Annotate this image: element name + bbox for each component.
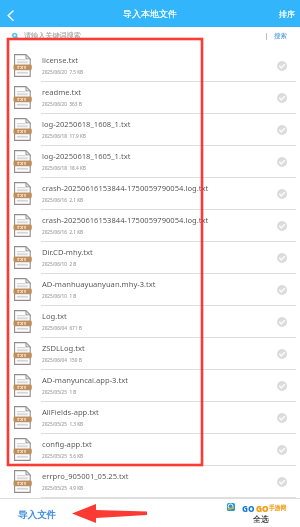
staticText: crash-20250616153844-1750059790054.log.t… [42,215,209,225]
button[interactable]: TXT [0,146,300,178]
button[interactable]: TXT [0,210,300,242]
staticText: AllFields-app.txt [42,407,99,417]
staticText: 2025/06/20 7.5 KB [42,69,84,75]
staticText: 2025/05/25 1 B [42,389,77,395]
staticText: 搜索 [274,32,287,40]
staticText: errpro_905001_05.25.txt [42,471,129,481]
button[interactable]: Select file [277,93,287,103]
staticText: TXT [17,97,28,103]
button[interactable]: TXT [0,338,300,370]
staticText: GO [256,503,269,514]
staticText: 导入文件 [18,509,56,521]
staticText: 2025/06/10 2 B [42,261,77,267]
staticText: Dir.CD-mhy.txt [42,247,93,257]
staticText: log-20250618_1608_1.txt [42,119,131,129]
button[interactable]: TXT [0,274,300,306]
staticText: log-20250618_1605_1.txt [42,151,131,161]
staticText: Log.txt [42,311,67,321]
button[interactable]: TXT [0,178,300,210]
button[interactable]: TXT [0,82,300,114]
button[interactable]: Back [0,2,24,26]
staticText: 2025/06/04 150 B [42,357,82,363]
staticText: config-app.txt [42,439,92,449]
staticText: 导入本地文件 [123,8,177,19]
button[interactable]: Select file [277,221,287,231]
staticText: 2025/06/16 2.1 KB [42,229,84,235]
staticText: 2025/05/25 1.3 KB [42,421,84,427]
staticText: crash-20250616153844-1750059790054.log.t… [42,183,209,193]
staticText: 2025/06/20 563 B [42,101,82,107]
staticText: TXT [17,225,28,231]
staticText: TXT [17,193,28,199]
button[interactable]: TXT [0,370,300,402]
staticText: 2025/05/25 4.9 KB [42,485,84,491]
button[interactable]: 搜索 [273,29,288,43]
button[interactable]: Select file [277,445,287,455]
button[interactable]: 全选 [243,511,300,527]
button[interactable]: Select file [277,413,287,423]
staticText: 2025/05/25 5.6 KB [42,453,84,459]
staticText: TXT [17,321,28,327]
staticText: license.txt [42,55,78,65]
button[interactable]: Select file [277,285,287,295]
staticText: readme.txt [42,87,82,97]
staticText: TXT [17,449,28,455]
staticText: TXT [17,481,28,487]
button[interactable]: Sort [271,4,300,24]
staticText: TXT [17,129,28,135]
staticText: 2025/06/04 671 B [42,325,82,331]
staticText: TXT [17,417,28,423]
staticText: 请输入关键词搜索 [24,31,81,40]
staticText: GO [242,503,255,514]
staticText: 排序 [279,9,295,19]
button[interactable]: Select file [277,189,287,199]
button[interactable]: Select file [277,61,287,71]
staticText: 2025/06/18 18.4 KB [42,165,86,171]
button[interactable]: Select file [277,381,287,391]
staticText: 2025/06/10 1 B [42,293,77,299]
staticText: TXT [17,289,28,295]
staticText: 2025/06/18 17.9 KB [42,133,86,139]
button[interactable]: Select file [277,317,287,327]
staticText: 全选 [253,514,269,524]
staticText: TXT [17,385,28,391]
button[interactable]: TXT [0,434,300,466]
button[interactable]: TXT [0,466,300,498]
button[interactable]: TXT [0,402,300,434]
button[interactable]: Select file [277,253,287,263]
staticText: 2025/06/16 2.1 KB [42,197,84,203]
staticText: AD-manhuayuanyuan.mhy-3.txt [42,279,156,289]
button[interactable]: Select file [277,477,287,487]
staticText: TXT [17,65,28,71]
staticText: TXT [17,353,28,359]
button[interactable]: TXT [0,306,300,338]
staticText: 手游网 [269,504,287,511]
staticText: ZSDLLog.txt [42,343,85,353]
staticText: TXT [17,161,28,167]
staticText: AD-manyuncai.app-3.txt [42,375,128,385]
button[interactable]: TXT [0,114,300,146]
button[interactable]: Select file [277,157,287,167]
button[interactable]: TXT [0,50,300,82]
staticText: TXT [17,257,28,263]
button[interactable]: Select file [277,349,287,359]
button[interactable]: TXT [0,242,300,274]
button[interactable]: Select file [277,125,287,135]
button[interactable]: 导入文件 [0,505,66,525]
